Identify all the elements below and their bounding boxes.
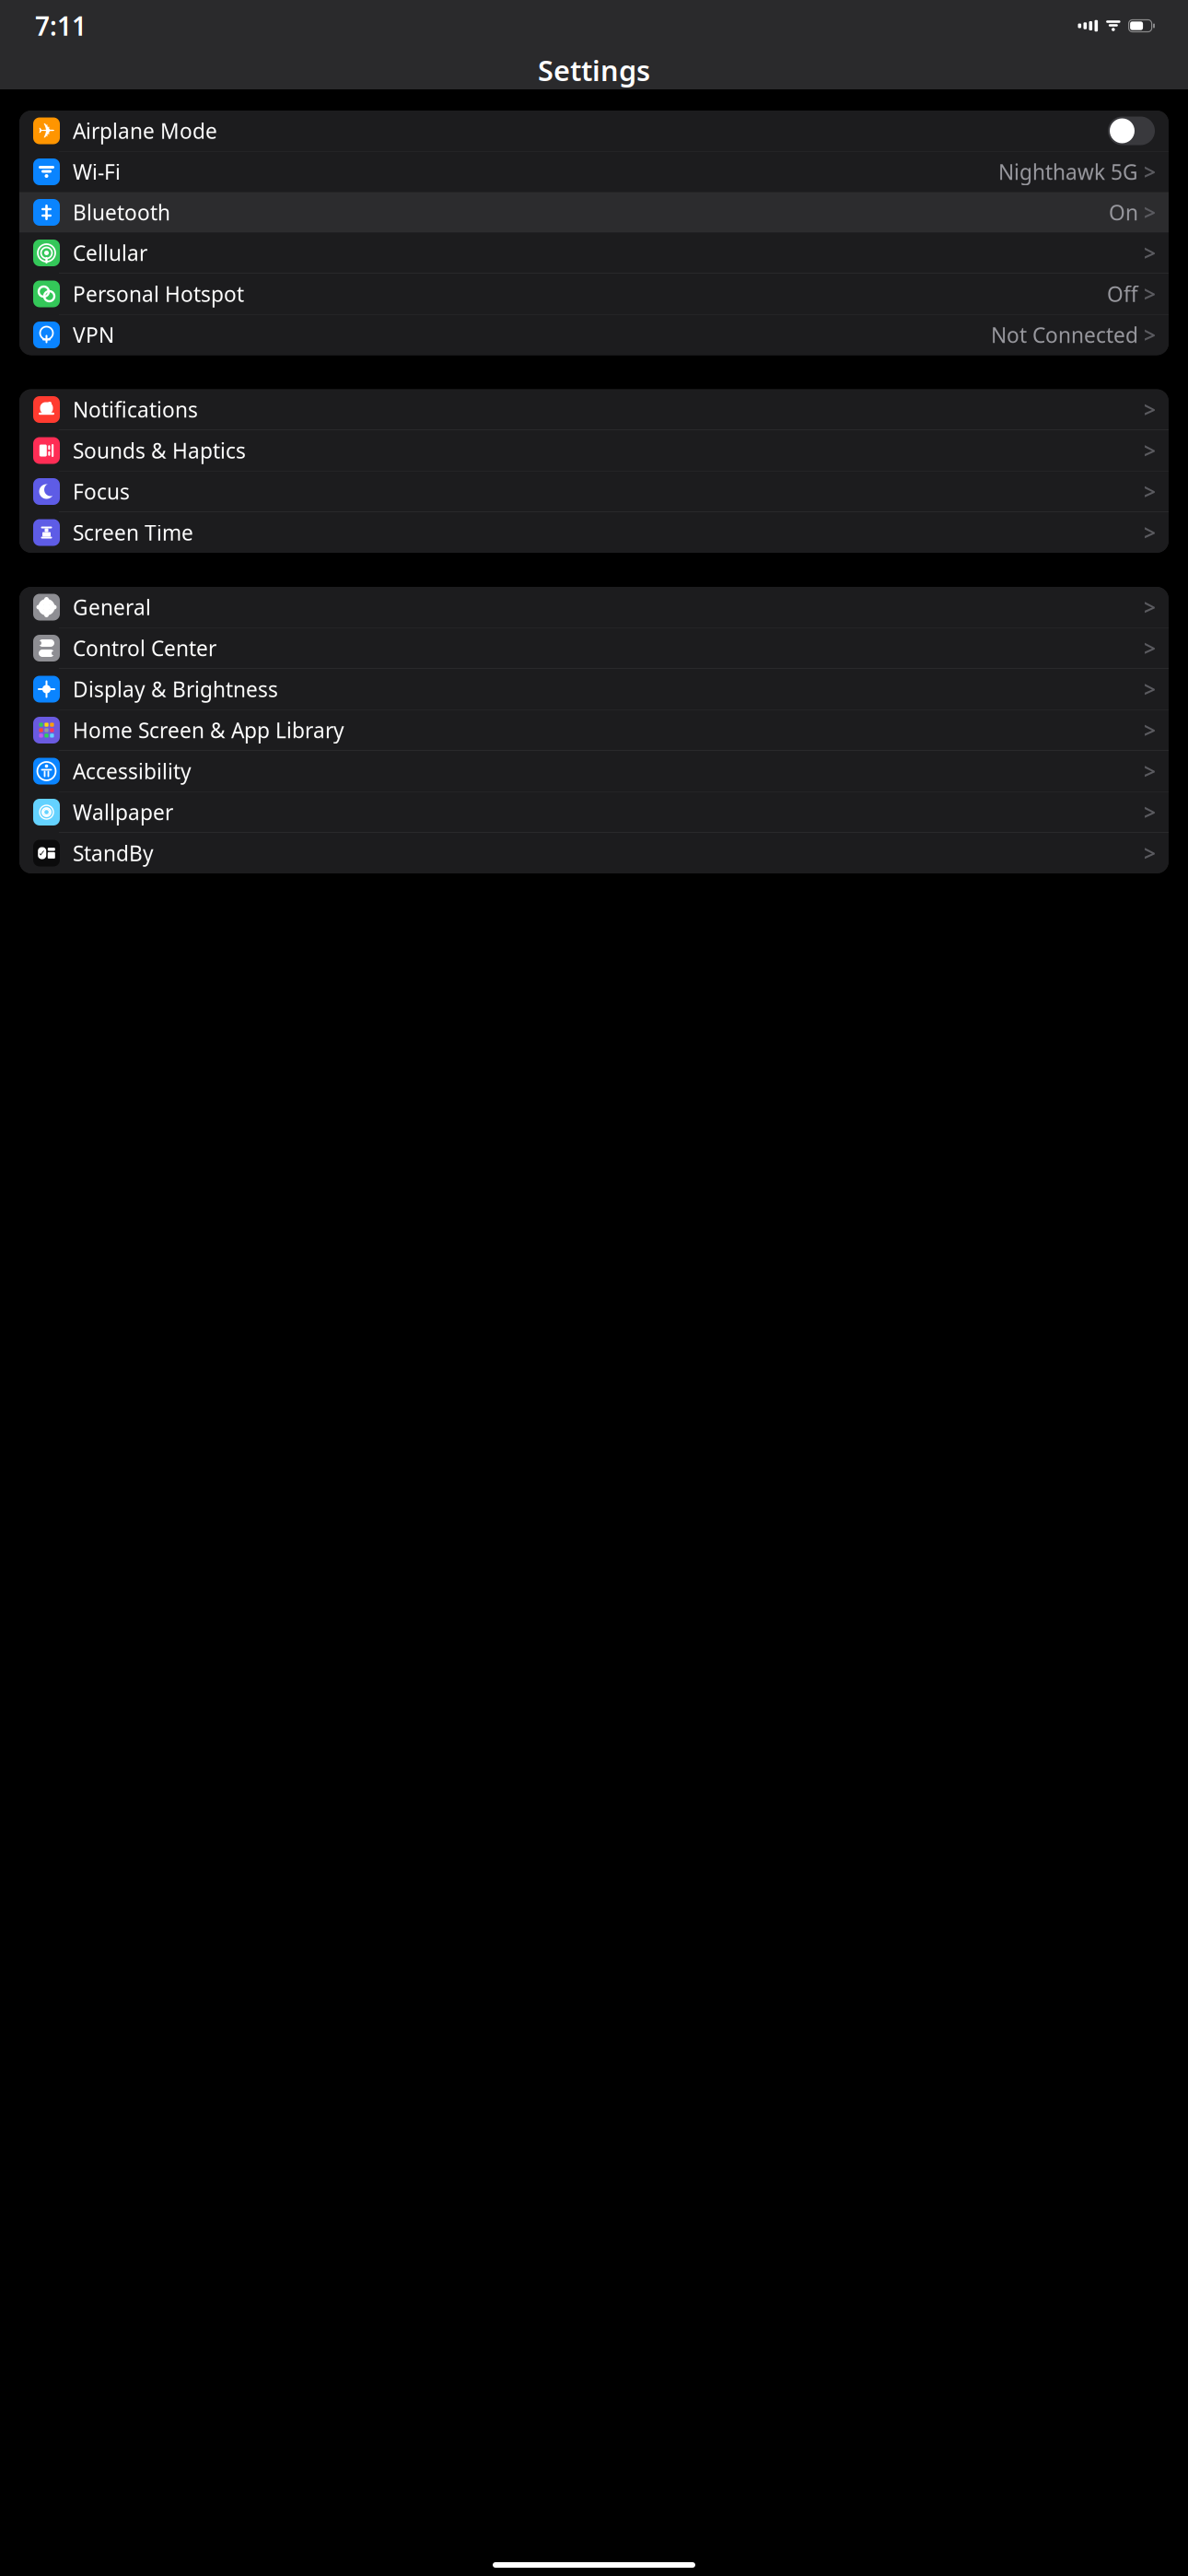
staticText: >: [1144, 321, 1156, 349]
staticText: >: [1144, 239, 1156, 267]
button[interactable]: Wi-Fi: [19, 152, 1169, 192]
button[interactable]: General: [19, 587, 1169, 627]
staticText: >: [1144, 839, 1156, 867]
staticText: Nighthawk 5G: [998, 158, 1138, 186]
button[interactable]: Home Screen & App Library: [19, 710, 1169, 750]
staticText: Settings: [538, 51, 650, 89]
staticText: StandBy: [73, 839, 154, 867]
staticText: ✈: [38, 119, 55, 143]
staticText: Personal Hotspot: [73, 280, 244, 308]
staticText: Display & Brightness: [73, 675, 278, 703]
button[interactable]: Control Center: [19, 628, 1169, 668]
button[interactable]: Notifications: [19, 389, 1169, 430]
staticText: >: [1144, 675, 1156, 703]
staticText: 7:11: [35, 9, 87, 43]
button[interactable]: VPN: [19, 315, 1169, 355]
button[interactable]: Screen Time: [19, 512, 1169, 553]
staticText: >: [1144, 757, 1156, 785]
staticText: >: [1144, 478, 1156, 505]
staticText: >: [1144, 396, 1156, 423]
staticText: >: [1144, 280, 1156, 308]
staticText: Wi-Fi: [73, 158, 121, 186]
staticText: VPN: [73, 321, 114, 349]
staticText: >: [1144, 198, 1156, 226]
staticText: >: [1144, 716, 1156, 744]
staticText: Off: [1107, 280, 1138, 308]
button[interactable]: ✓: [19, 833, 1169, 873]
button[interactable]: Cellular: [19, 233, 1169, 273]
button[interactable]: Bluetooth: [19, 192, 1169, 233]
button[interactable]: Focus: [19, 471, 1169, 512]
staticText: Not Connected: [991, 321, 1138, 349]
button[interactable]: Display & Brightness: [19, 669, 1169, 709]
staticText: Notifications: [73, 396, 198, 423]
staticText: Focus: [73, 478, 130, 505]
staticText: >: [1144, 593, 1156, 621]
staticText: >: [1144, 158, 1156, 186]
staticText: ✓: [38, 848, 46, 858]
button[interactable]: Accessibility: [19, 751, 1169, 791]
staticText: Sounds & Haptics: [73, 437, 246, 464]
staticText: Accessibility: [73, 757, 192, 785]
staticText: >: [1144, 798, 1156, 826]
staticText: >: [1144, 437, 1156, 464]
staticText: Airplane Mode: [73, 117, 217, 145]
staticText: Home Screen & App Library: [73, 716, 344, 744]
staticText: Screen Time: [73, 519, 193, 546]
staticText: On: [1109, 198, 1138, 226]
button[interactable]: Personal Hotspot: [19, 274, 1169, 314]
staticText: >: [1144, 519, 1156, 546]
button[interactable]: Wallpaper: [19, 792, 1169, 832]
staticText: Control Center: [73, 634, 216, 662]
button[interactable]: Sounds & Haptics: [19, 430, 1169, 471]
staticText: Bluetooth: [73, 198, 170, 226]
staticText: Cellular: [73, 239, 147, 267]
staticText: Wallpaper: [73, 798, 173, 826]
button[interactable]: ✈: [19, 111, 1169, 151]
staticText: General: [73, 593, 151, 621]
staticText: >: [1144, 634, 1156, 662]
